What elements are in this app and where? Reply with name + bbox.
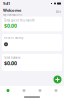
staticText: Edit (56, 10, 61, 14)
staticText: $0.00 (4, 22, 17, 29)
staticText: Welcome (3, 8, 21, 13)
button[interactable]: Home (0, 86, 16, 95)
button[interactable]: Stats (16, 86, 32, 95)
staticText: $0.00 (4, 59, 17, 67)
staticText: Total balance (4, 56, 21, 59)
button[interactable]: Add transaction (53, 75, 62, 84)
staticText: 9:41 (3, 1, 10, 6)
staticText: Recent activity (4, 36, 23, 39)
button[interactable]: Profile (48, 86, 64, 95)
staticText: My transactions (3, 13, 22, 16)
button[interactable]: Edit (56, 10, 61, 14)
button[interactable]: Cards (32, 86, 48, 95)
staticText: Total spent this month (4, 19, 35, 22)
